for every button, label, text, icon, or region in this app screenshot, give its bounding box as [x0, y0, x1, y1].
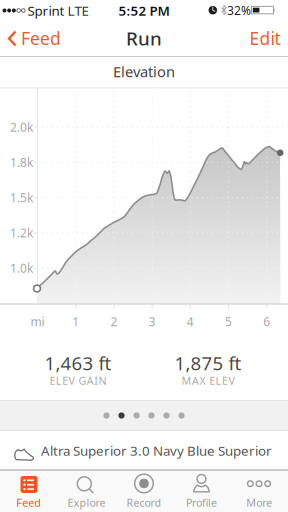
staticText: MAX ELEV: [182, 373, 234, 388]
button[interactable]: More: [230, 470, 288, 512]
staticText: 1.2k: [10, 225, 33, 241]
staticText: 1.0k: [10, 260, 33, 276]
staticText: Sprint: [27, 2, 64, 19]
staticText: Explore: [67, 495, 105, 510]
staticText: 1.5k: [10, 190, 33, 205]
staticText: LTE: [67, 2, 88, 19]
staticText: Edit: [249, 27, 280, 50]
staticText: 5: [225, 313, 232, 329]
staticText: Altra Superior 3.0 Navy Blue Superior: [41, 442, 272, 459]
staticText: Profile: [186, 495, 217, 510]
staticText: ELEV GAIN: [49, 373, 107, 388]
staticText: 1,463 ft: [44, 351, 111, 375]
staticText: 1.8k: [10, 154, 33, 170]
button[interactable]: Back to Feed: [2, 22, 60, 55]
staticText: 6: [263, 313, 270, 329]
staticText: Feed: [21, 27, 61, 50]
staticText: More: [246, 495, 272, 510]
button[interactable]: Altra Superior 3.0 Navy Blue Superior: [0, 432, 288, 469]
button[interactable]: Profile: [173, 470, 230, 512]
staticText: 3: [149, 313, 156, 329]
staticText: 1: [72, 313, 79, 329]
staticText: 2: [110, 313, 117, 329]
staticText: 5:52 PM: [118, 2, 169, 19]
button[interactable]: Record: [115, 470, 173, 512]
staticText: 2.0k: [10, 119, 33, 135]
staticText: 32%: [227, 2, 251, 18]
staticText: 1,875 ft: [174, 351, 241, 375]
button[interactable]: Feed: [0, 470, 58, 512]
staticText: 4: [187, 313, 194, 329]
button[interactable]: Explore: [58, 470, 115, 512]
button[interactable]: Edit: [245, 22, 285, 55]
staticText: Elevation: [113, 62, 175, 81]
staticText: mi: [30, 313, 44, 329]
staticText: Record: [126, 495, 161, 510]
staticText: Run: [126, 26, 162, 51]
staticText: Feed: [16, 495, 41, 510]
